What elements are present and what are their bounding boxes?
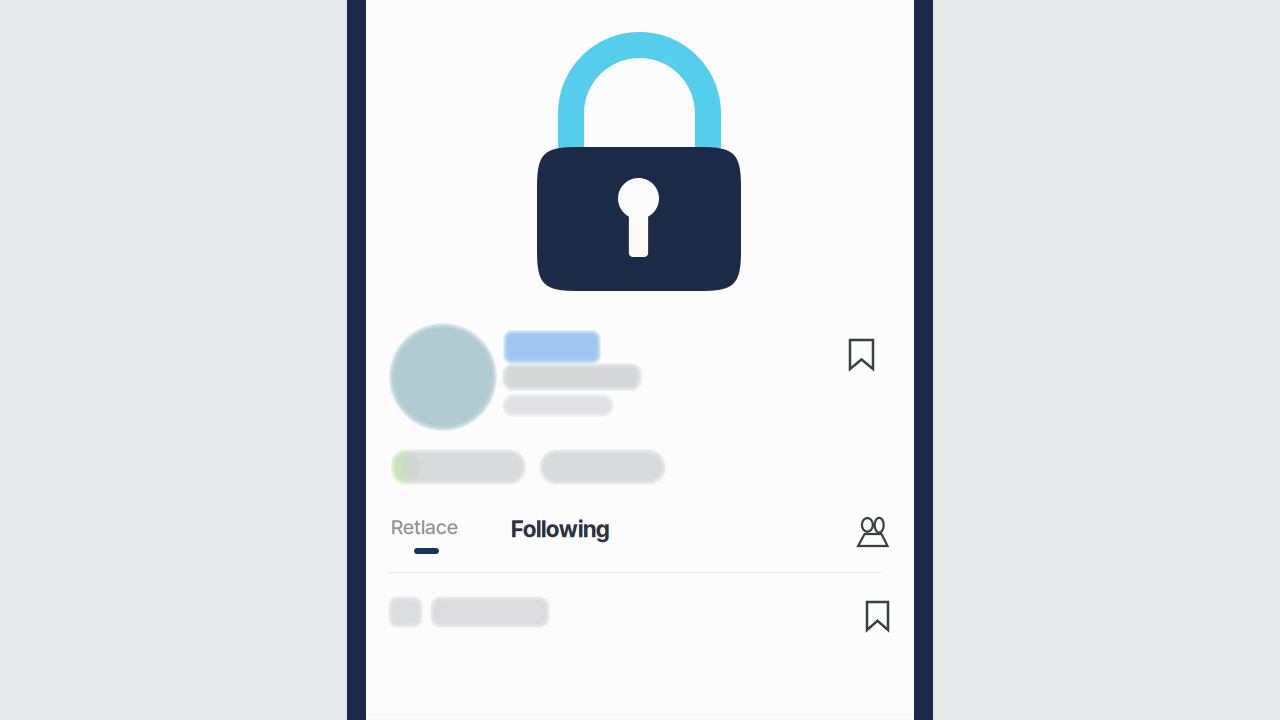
- button[interactable]: Retlace: [391, 514, 491, 562]
- staticText: Following: [511, 515, 610, 543]
- staticText: Retlace: [391, 515, 458, 539]
- button[interactable]: [366, 583, 914, 655]
- button[interactable]: Save: [858, 593, 897, 639]
- button[interactable]: Members: [848, 507, 897, 555]
- button[interactable]: Save: [841, 331, 882, 378]
- button[interactable]: Following: [511, 516, 661, 542]
